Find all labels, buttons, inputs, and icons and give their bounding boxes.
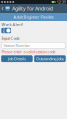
button[interactable]: Job Details (1, 55, 32, 62)
staticText: Work Alert? (1, 22, 23, 27)
staticText: Please enter a valid station code (1, 49, 55, 54)
staticText: 12:39 (57, 0, 66, 5)
staticText: Station Number (3, 43, 30, 48)
staticText: Input Code (1, 35, 19, 41)
button[interactable]: Back (1, 4, 4, 13)
staticText: ON (3, 27, 6, 34)
button[interactable]: Outstanding Jobs (34, 55, 65, 62)
staticText: Job Details (8, 56, 26, 61)
staticText: Agility for Android (12, 5, 53, 12)
staticText: Adult Beginner Flexible (13, 14, 53, 20)
staticText: Outstanding Jobs (36, 56, 64, 61)
button[interactable]: ON (1, 28, 11, 33)
